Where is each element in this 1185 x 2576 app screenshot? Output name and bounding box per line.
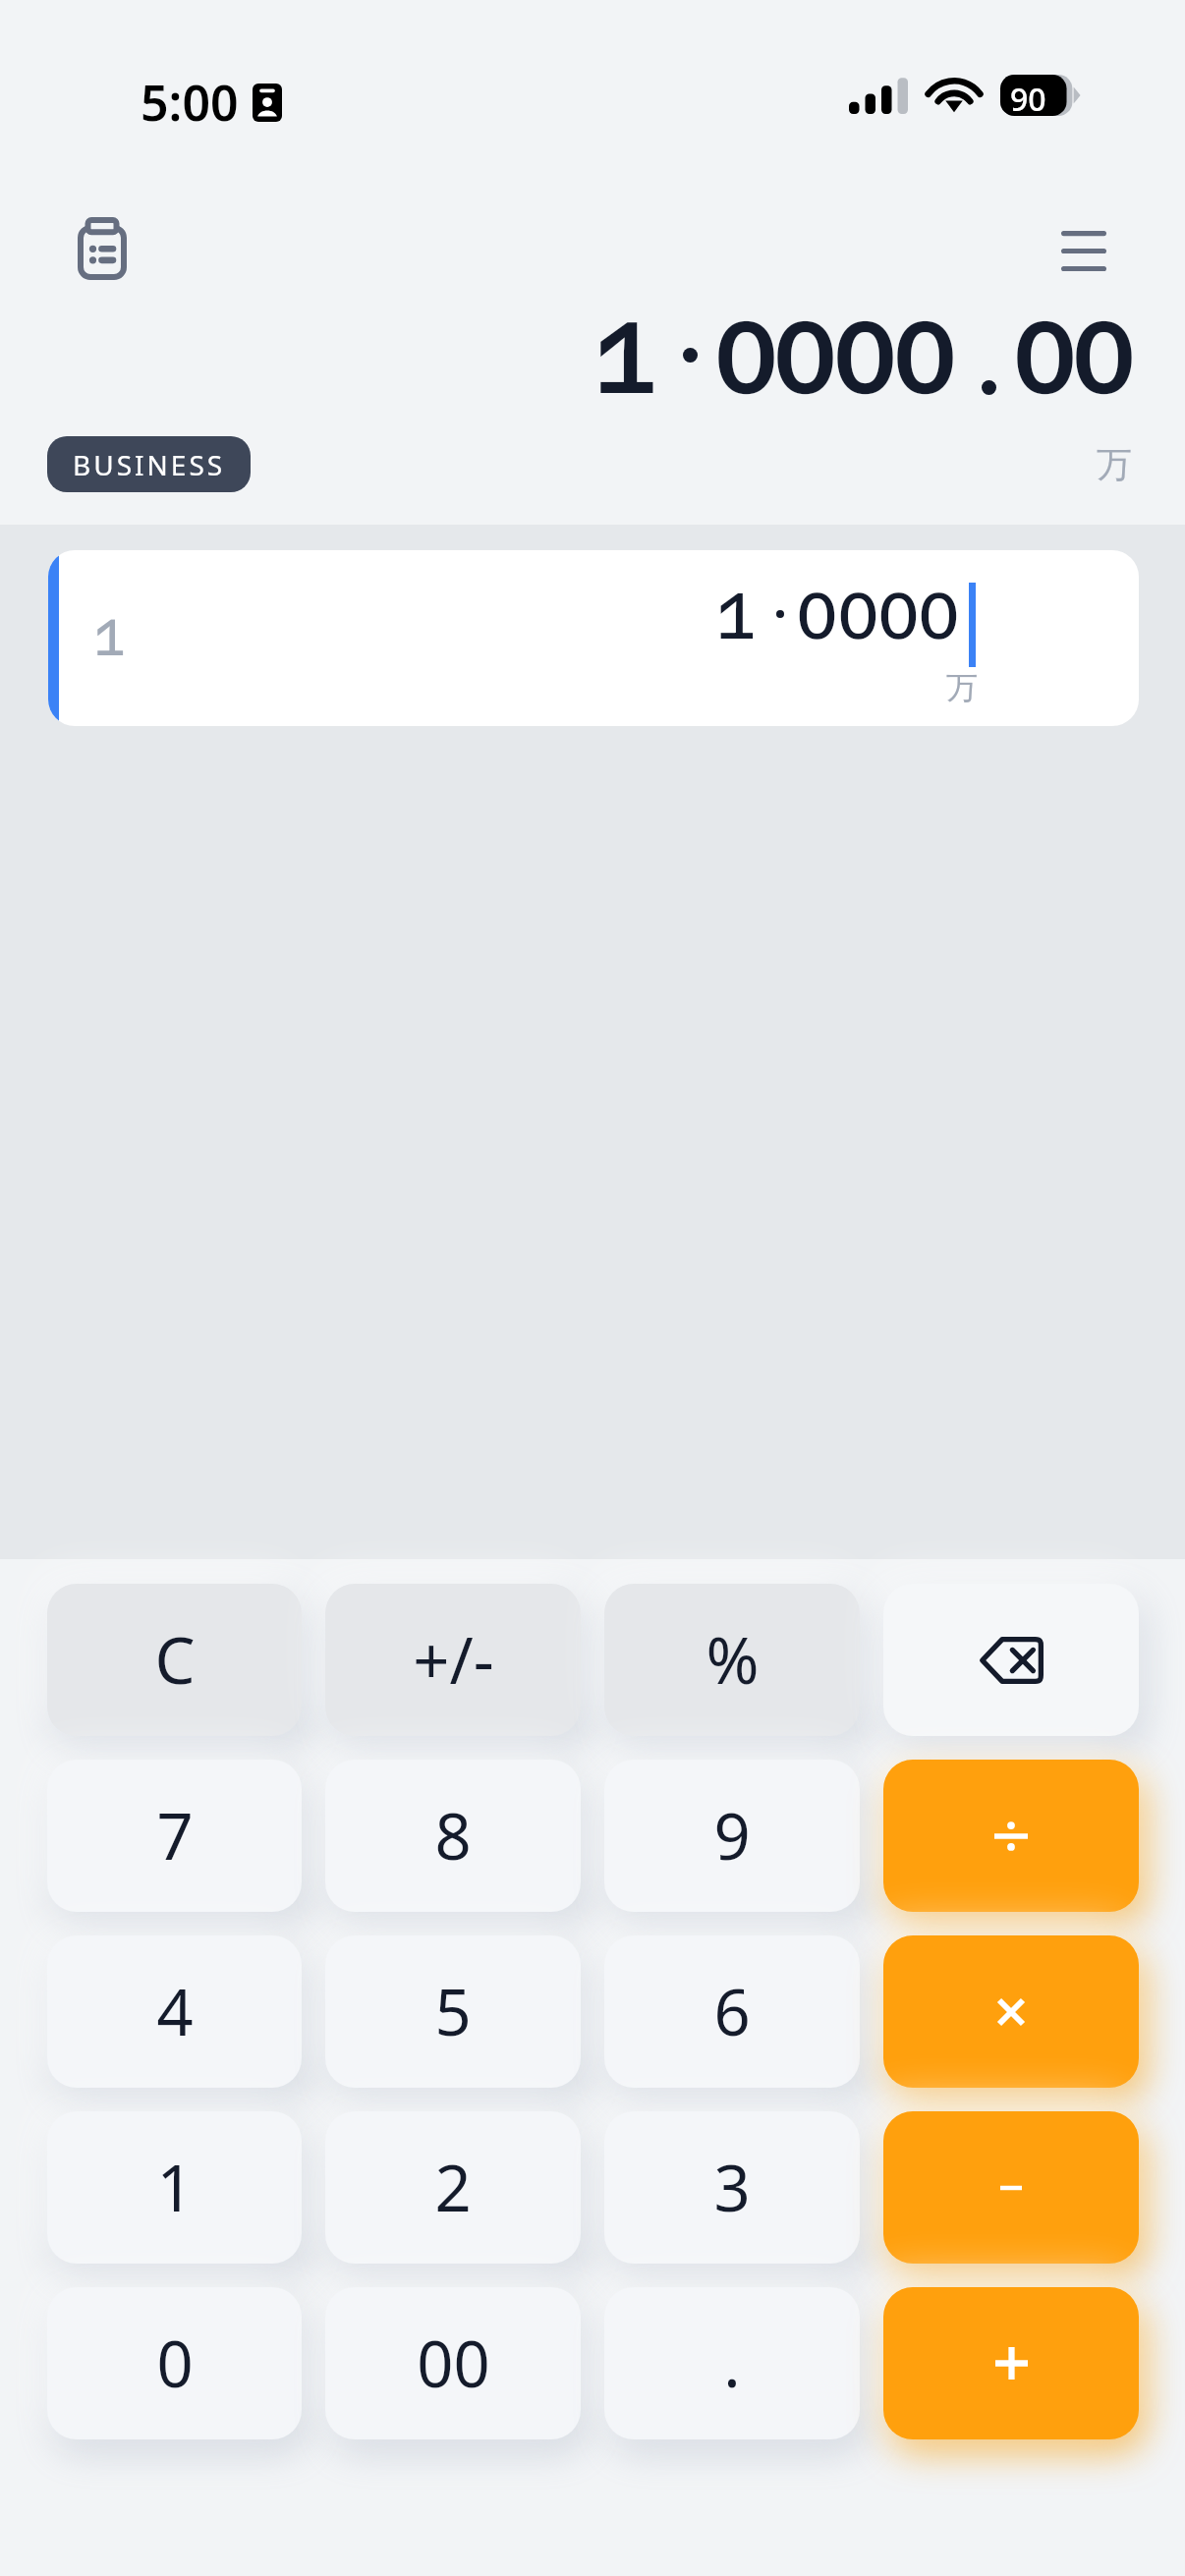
staticText: 8 — [434, 1792, 472, 1879]
button[interactable]: 5 — [325, 1935, 581, 2088]
button[interactable]: Backspace — [883, 1584, 1139, 1736]
staticText: 0 — [772, 298, 832, 420]
button[interactable]: 3 — [604, 2111, 860, 2264]
button[interactable]: Multiply — [883, 1935, 1139, 2088]
staticText: 3 — [713, 2144, 751, 2231]
staticText: 万 — [946, 668, 978, 707]
staticText: BUSINESS — [73, 446, 226, 483]
staticText: 0 — [796, 578, 836, 655]
button[interactable]: BUSINESS — [47, 436, 251, 492]
button[interactable]: 00 — [325, 2287, 581, 2439]
staticText: 0 — [918, 578, 958, 655]
staticText: 1 — [93, 607, 127, 667]
button[interactable]: Menu — [1037, 203, 1131, 298]
staticText: % — [705, 1616, 760, 1704]
staticText: 90 — [1010, 78, 1046, 119]
button[interactable]: Add — [883, 2287, 1139, 2439]
staticText: 万 — [1097, 442, 1132, 486]
button[interactable]: 1 — [47, 2111, 302, 2264]
button[interactable]: 0 — [47, 2287, 302, 2439]
button[interactable]: 2 — [325, 2111, 581, 2264]
button[interactable]: 7 — [47, 1760, 302, 1912]
button[interactable]: 1 — [48, 550, 1139, 726]
staticText: 2 — [434, 2144, 472, 2231]
button[interactable]: History — [55, 202, 149, 297]
staticText: 7 — [156, 1792, 194, 1879]
staticText: 0 — [1071, 298, 1131, 420]
staticText: 6 — [713, 1968, 751, 2055]
button[interactable]: 9 — [604, 1760, 860, 1912]
staticText: 4 — [156, 1968, 194, 2055]
staticText: C — [154, 1616, 196, 1704]
staticText: 1 — [715, 578, 756, 655]
staticText: 5 — [434, 1968, 472, 2055]
button[interactable]: Subtract — [883, 2111, 1139, 2264]
button[interactable]: . — [604, 2287, 860, 2439]
staticText: 0 — [877, 578, 918, 655]
button[interactable]: 6 — [604, 1935, 860, 2088]
staticText: 0 — [156, 2320, 194, 2407]
button[interactable]: 4 — [47, 1935, 302, 2088]
staticText: 0 — [837, 578, 877, 655]
staticText: 5:00 — [141, 69, 239, 136]
staticText: 1 — [593, 298, 653, 420]
staticText: 0 — [832, 298, 892, 420]
button[interactable]: C — [47, 1584, 302, 1736]
staticText: +/- — [413, 1616, 494, 1704]
staticText: 00 — [417, 2320, 490, 2407]
staticText: 0 — [713, 298, 773, 420]
staticText: 1 — [156, 2144, 194, 2231]
button[interactable]: 8 — [325, 1760, 581, 1912]
button[interactable]: Divide — [883, 1760, 1139, 1912]
staticText: 9 — [713, 1792, 751, 1879]
button[interactable]: +/- — [325, 1584, 581, 1736]
staticText: 0 — [1012, 298, 1072, 420]
staticText: 0 — [892, 298, 952, 420]
staticText: . — [723, 2320, 741, 2407]
button[interactable]: % — [604, 1584, 860, 1736]
